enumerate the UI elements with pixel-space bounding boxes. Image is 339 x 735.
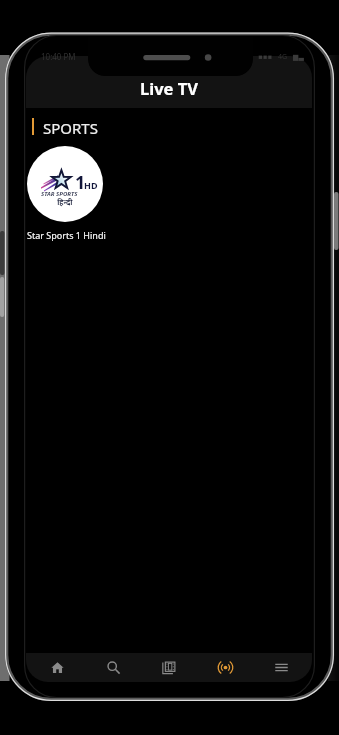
button[interactable]: Live TV (200, 653, 250, 682)
button[interactable]: Menu (256, 653, 306, 682)
button[interactable]: Search (88, 653, 138, 682)
staticText: 10:40 PM (41, 51, 76, 62)
staticText: Live TV (140, 77, 198, 95)
staticText: ▪▪▪ (258, 53, 273, 61)
staticText: हिन्दी (57, 197, 73, 207)
button[interactable]: Star Sports 1 Hindi (27, 146, 103, 222)
staticText: 1 (75, 170, 86, 195)
staticText: HD (84, 179, 98, 191)
button[interactable]: Home (32, 653, 82, 682)
staticText: STAR SPORTS (41, 190, 78, 198)
staticText: 4G (278, 52, 288, 62)
staticText: SPORTS (43, 118, 98, 135)
staticText: ▆▃ (293, 53, 304, 61)
button[interactable]: Movies (144, 653, 194, 682)
staticText: Star Sports 1 Hindi (27, 229, 106, 241)
